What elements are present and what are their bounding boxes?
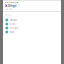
button[interactable]: Sounds [3,22,61,26]
staticText: Settings [5,4,16,7]
staticText: Privacy & Security [5,2,18,3]
staticText: Sounds [9,23,15,25]
button[interactable]: Notifications [3,18,61,22]
staticText: Notifications [9,19,17,21]
staticText: GENERAL [5,14,12,16]
button[interactable]: Display [3,30,61,34]
button[interactable]: Focus Mode [3,26,61,30]
staticText: Display [9,31,14,33]
staticText: Notifications [5,8,13,10]
staticText: Focus Mode [9,27,18,29]
